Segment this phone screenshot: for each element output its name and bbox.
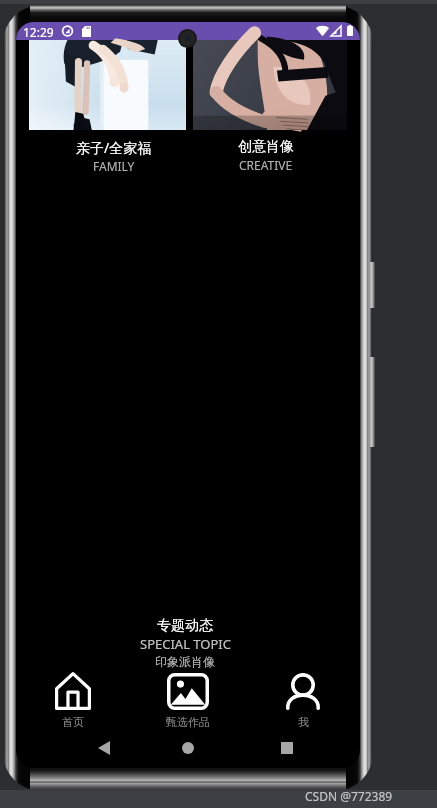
staticText: CSDN @772389	[305, 788, 393, 804]
button[interactable]: Recent apps	[255, 726, 319, 768]
staticText: 亲子/全家福	[76, 138, 152, 157]
button[interactable]: Back	[72, 726, 136, 768]
button[interactable]	[29, 40, 186, 130]
staticText: 创意肖像	[238, 138, 294, 156]
staticText: 专题动态	[157, 617, 213, 635]
staticText: 12:29	[23, 24, 54, 40]
staticText: 印象派肖像	[155, 654, 215, 669]
staticText: 首页	[62, 715, 84, 729]
staticText: FAMILY	[93, 158, 135, 174]
button[interactable]: Home	[156, 726, 220, 768]
staticText: 甄选作品	[166, 715, 210, 729]
button[interactable]: 甄选作品	[140, 673, 236, 729]
button[interactable]: 我	[255, 673, 351, 729]
staticText: 我	[298, 715, 309, 729]
staticText: SPECIAL TOPIC	[140, 635, 231, 653]
staticText: CREATIVE	[239, 157, 293, 173]
button[interactable]	[193, 40, 347, 130]
button[interactable]: 首页	[25, 672, 121, 729]
